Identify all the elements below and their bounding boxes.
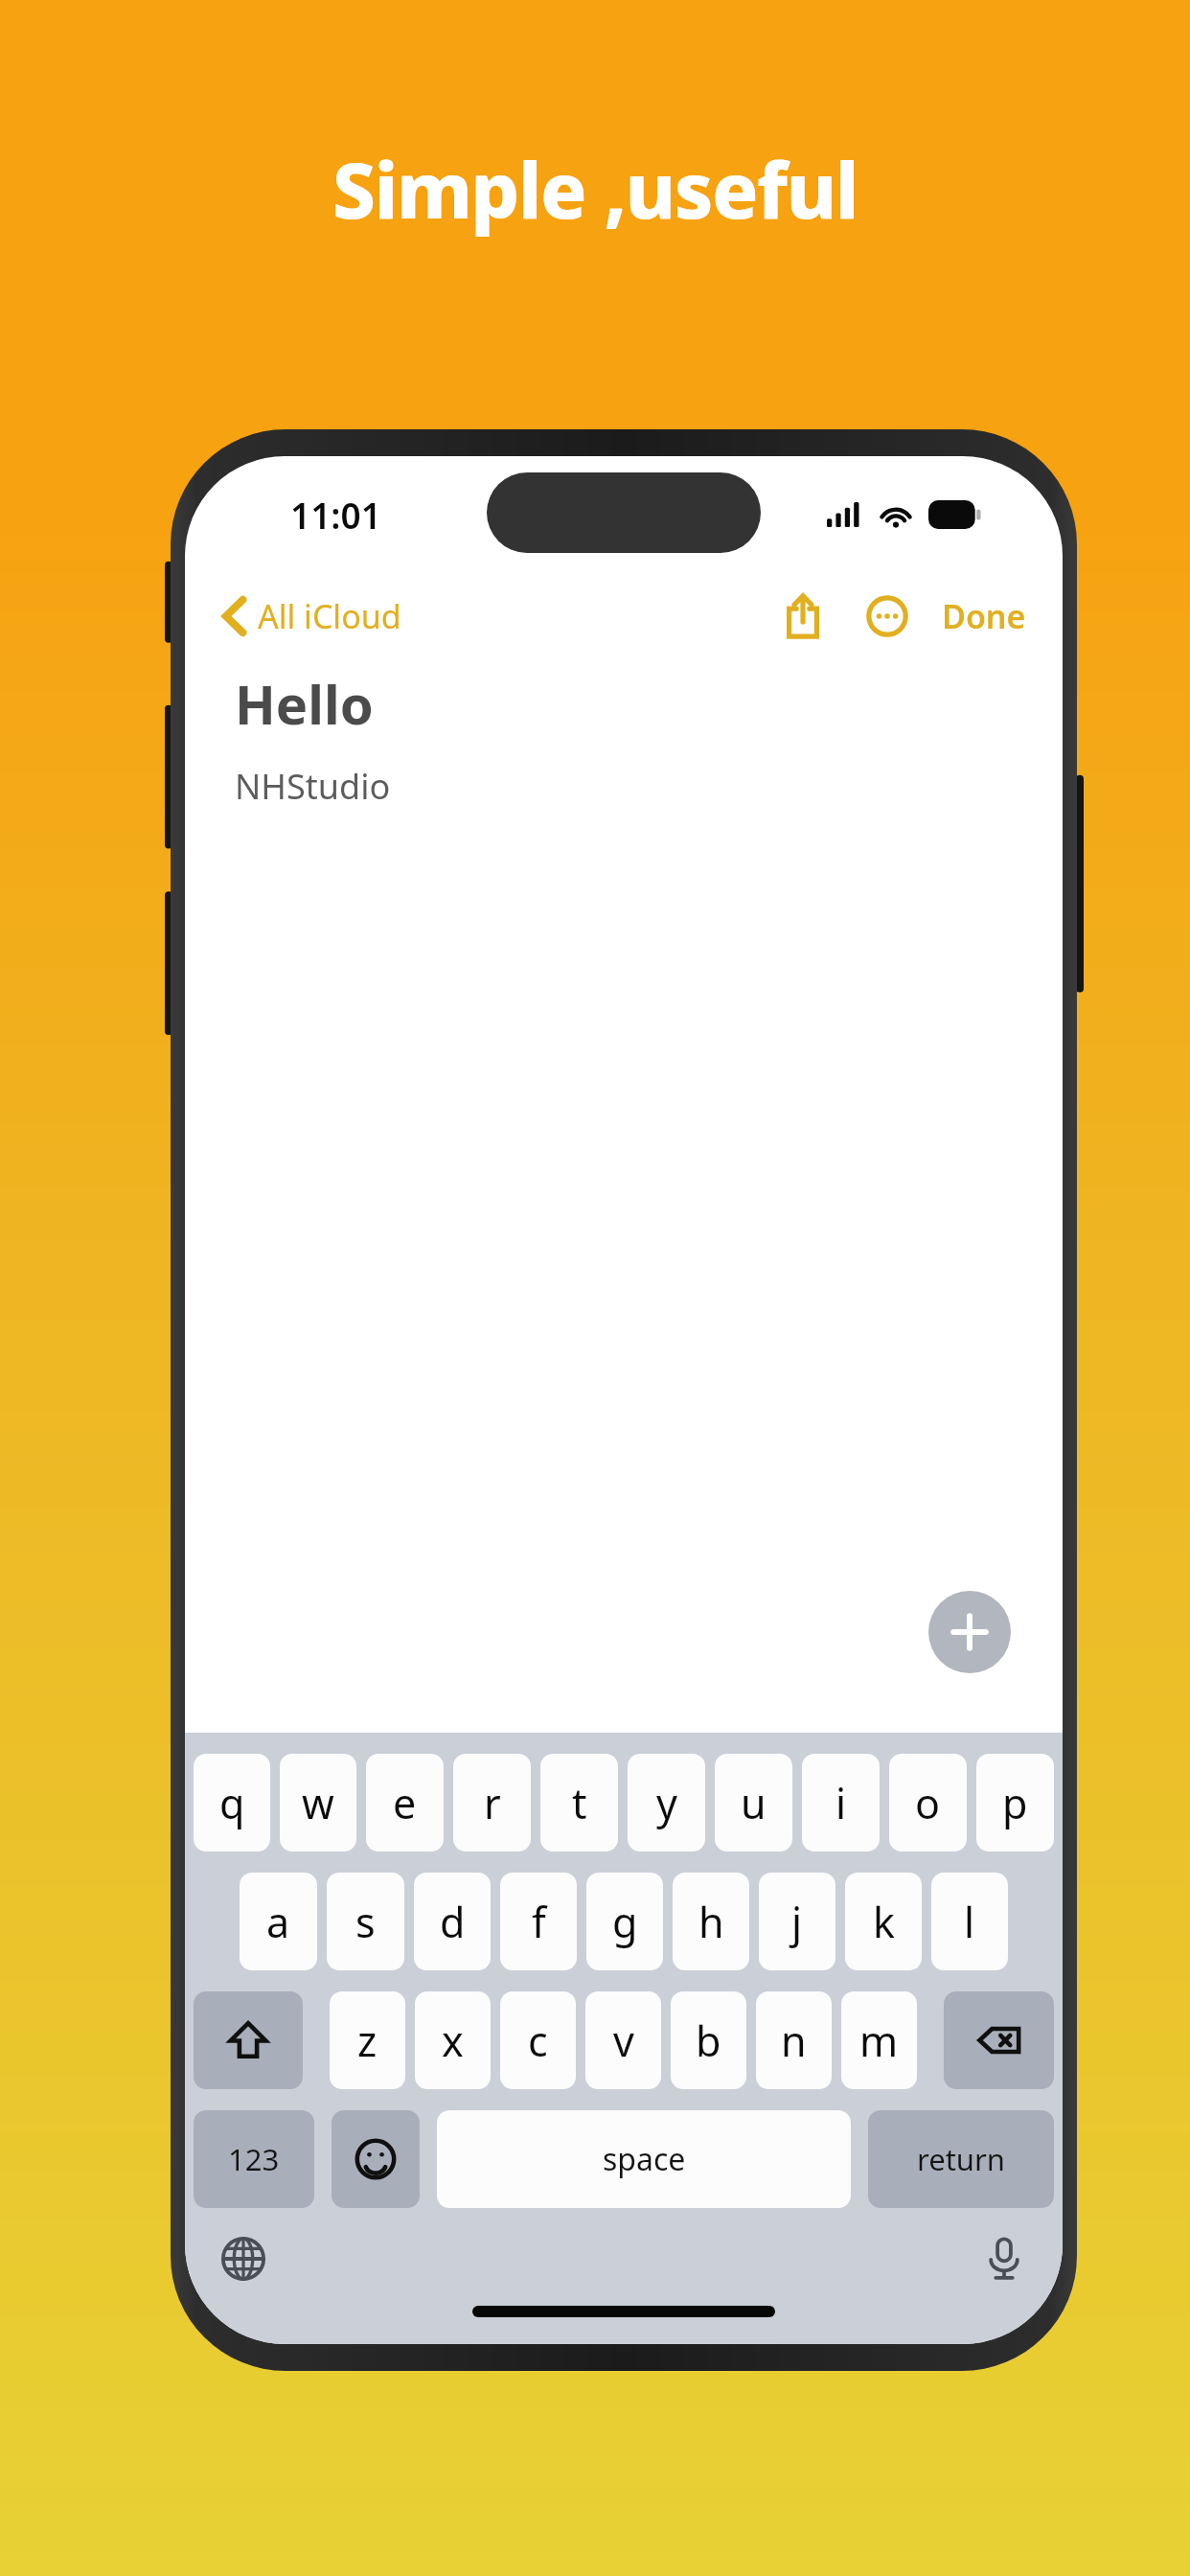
- staticText: t: [572, 1775, 587, 1831]
- button[interactable]: s: [327, 1873, 404, 1970]
- staticText: y: [656, 1775, 677, 1831]
- staticText: r: [484, 1775, 501, 1831]
- staticText: z: [357, 2012, 378, 2069]
- staticText: h: [698, 1894, 724, 1950]
- staticText: u: [741, 1775, 767, 1831]
- button[interactable]: z: [330, 1991, 405, 2089]
- button[interactable]: return: [868, 2110, 1054, 2208]
- staticText: l: [964, 1894, 975, 1950]
- button[interactable]: space: [437, 2110, 851, 2208]
- button[interactable]: f: [500, 1873, 577, 1970]
- staticText: Hello: [235, 667, 374, 740]
- button[interactable]: r: [453, 1754, 531, 1851]
- button[interactable]: y: [628, 1754, 705, 1851]
- button[interactable]: New note: [928, 1591, 1011, 1673]
- button[interactable]: w: [280, 1754, 356, 1851]
- button[interactable]: d: [414, 1873, 491, 1970]
- staticText: x: [442, 2012, 464, 2069]
- staticText: 123: [228, 2139, 280, 2179]
- button[interactable]: 123: [194, 2110, 314, 2208]
- staticText: b: [696, 2012, 721, 2069]
- button[interactable]: n: [756, 1991, 832, 2089]
- staticText: All iCloud: [258, 594, 401, 638]
- staticText: q: [219, 1775, 245, 1831]
- staticText: space: [603, 2138, 686, 2180]
- staticText: f: [532, 1894, 546, 1950]
- button[interactable]: g: [586, 1873, 663, 1970]
- button[interactable]: q: [194, 1754, 270, 1851]
- button[interactable]: v: [585, 1991, 661, 2089]
- staticText: return: [917, 2139, 1005, 2179]
- button[interactable]: a: [240, 1873, 317, 1970]
- staticText: c: [528, 2012, 548, 2069]
- button[interactable]: Share: [771, 585, 835, 648]
- button[interactable]: u: [715, 1754, 792, 1851]
- staticText: Done: [942, 594, 1026, 638]
- staticText: n: [781, 2012, 807, 2069]
- staticText: o: [915, 1775, 941, 1831]
- button[interactable]: i: [802, 1754, 880, 1851]
- staticText: d: [440, 1894, 466, 1950]
- staticText: m: [859, 2012, 899, 2069]
- button[interactable]: All iCloud: [216, 586, 409, 646]
- button[interactable]: b: [671, 1991, 746, 2089]
- button[interactable]: t: [540, 1754, 618, 1851]
- staticText: NHStudio: [235, 763, 391, 810]
- button[interactable]: l: [931, 1873, 1008, 1970]
- staticText: Simple ,useful: [0, 136, 1190, 241]
- button[interactable]: Done: [932, 585, 1036, 648]
- button[interactable]: e: [366, 1754, 444, 1851]
- staticText: v: [613, 2012, 634, 2069]
- button[interactable]: j: [759, 1873, 835, 1970]
- staticText: e: [393, 1775, 417, 1831]
- button[interactable]: Emoji: [332, 2110, 420, 2208]
- button[interactable]: k: [845, 1873, 922, 1970]
- button[interactable]: h: [673, 1873, 749, 1970]
- button[interactable]: Backspace: [944, 1991, 1054, 2089]
- button[interactable]: Switch keyboard: [208, 2223, 279, 2294]
- button[interactable]: More options: [856, 585, 919, 648]
- staticText: g: [612, 1894, 638, 1950]
- staticText: i: [835, 1775, 847, 1831]
- staticText: a: [266, 1894, 290, 1950]
- staticText: s: [355, 1894, 376, 1950]
- staticText: 11:01: [290, 491, 381, 539]
- button[interactable]: c: [500, 1991, 576, 2089]
- button[interactable]: x: [415, 1991, 491, 2089]
- staticText: p: [1002, 1775, 1028, 1831]
- button[interactable]: o: [889, 1754, 967, 1851]
- staticText: w: [302, 1775, 334, 1831]
- button[interactable]: m: [841, 1991, 917, 2089]
- button[interactable]: p: [976, 1754, 1054, 1851]
- button[interactable]: Dictation: [969, 2223, 1040, 2294]
- staticText: j: [791, 1894, 803, 1950]
- staticText: k: [873, 1894, 895, 1950]
- button[interactable]: Shift: [194, 1991, 303, 2089]
